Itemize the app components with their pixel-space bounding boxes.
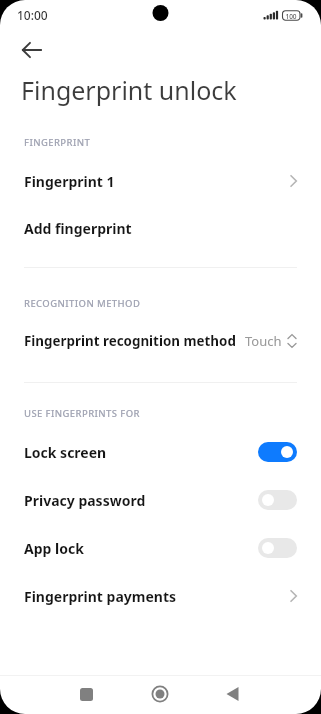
staticText: Fingerprint unlock <box>21 73 237 107</box>
button[interactable]: Fingerprint 1 <box>0 157 321 205</box>
staticText: Touch <box>245 332 282 350</box>
staticText: App lock <box>24 539 84 558</box>
staticText: Add fingerprint <box>24 219 132 238</box>
button[interactable]: Privacy password <box>0 476 321 524</box>
staticText: 10:00 <box>17 7 48 23</box>
staticText: Fingerprint recognition method <box>24 332 236 350</box>
staticText: Fingerprint payments <box>24 587 176 606</box>
button[interactable] <box>140 674 180 714</box>
staticText: Privacy password <box>24 491 146 510</box>
button[interactable] <box>213 674 253 714</box>
button[interactable]: Add fingerprint <box>0 204 321 252</box>
staticText: Lock screen <box>24 443 107 462</box>
staticText: 100 <box>284 12 298 21</box>
button[interactable]: App lock <box>0 524 321 572</box>
button[interactable]: Lock screen <box>0 428 321 476</box>
staticText: Fingerprint 1 <box>24 172 115 191</box>
button[interactable]: Fingerprint recognition method <box>0 317 321 365</box>
staticText: RECOGNITION METHOD <box>24 297 141 310</box>
button[interactable]: Fingerprint payments <box>0 572 321 620</box>
button[interactable] <box>66 674 106 714</box>
button[interactable] <box>258 538 297 558</box>
staticText: USE FINGERPRINTS FOR <box>24 407 140 420</box>
staticText: FINGERPRINT <box>24 136 91 149</box>
button[interactable] <box>258 442 297 462</box>
button[interactable] <box>12 30 52 70</box>
button[interactable] <box>258 490 297 510</box>
